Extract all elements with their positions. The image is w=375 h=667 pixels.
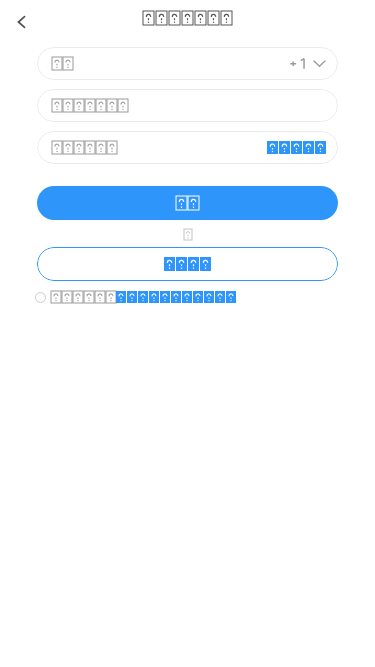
button[interactable] [37,186,338,220]
button[interactable] [37,247,338,281]
button[interactable] [35,291,236,303]
button[interactable]: Country code [37,47,338,80]
button[interactable] [267,141,326,154]
button[interactable]: Back [3,3,41,41]
button[interactable] [37,131,338,164]
button[interactable] [37,89,338,122]
button[interactable]: Country code [290,57,325,70]
